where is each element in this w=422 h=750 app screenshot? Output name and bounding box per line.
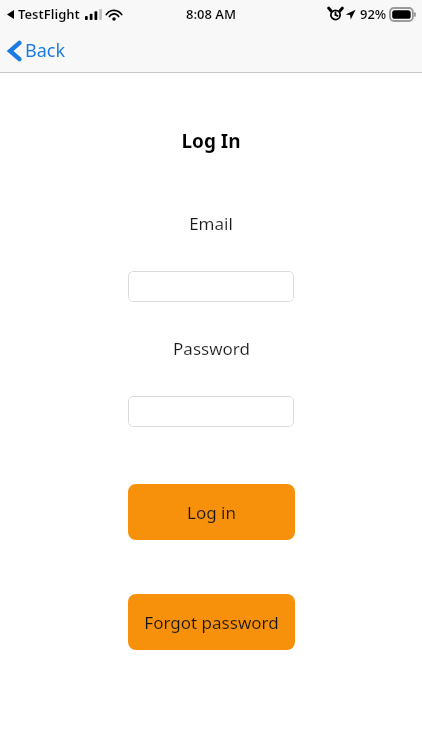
staticText: Email: [189, 212, 233, 235]
staticText: 92%: [360, 5, 387, 23]
staticText: TestFlight: [18, 5, 80, 23]
staticText: Log In: [181, 128, 241, 154]
button[interactable]: Forgot password: [128, 594, 295, 650]
staticText: Password: [173, 337, 250, 360]
staticText: Log in: [187, 501, 236, 524]
staticText: 8:08 AM: [186, 5, 237, 23]
staticText: Forgot password: [144, 611, 279, 634]
button[interactable]: Log in: [128, 484, 295, 540]
button[interactable]: [128, 396, 294, 427]
staticText: Back: [25, 38, 66, 63]
button[interactable]: Back: [0, 32, 80, 69]
button[interactable]: [128, 271, 294, 302]
